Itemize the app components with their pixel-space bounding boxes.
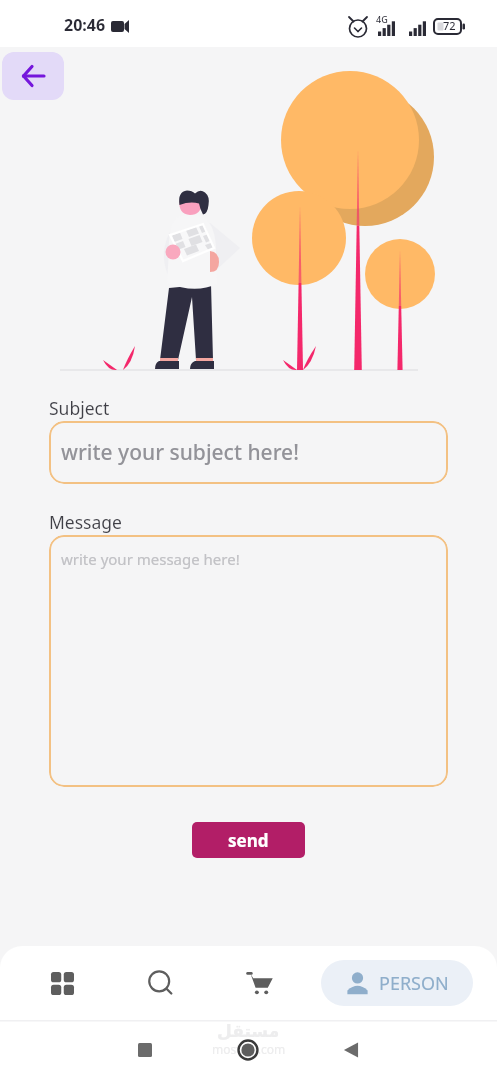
staticText: Message	[49, 510, 122, 534]
staticText: 20:46	[64, 14, 106, 36]
staticText: 72	[443, 18, 456, 33]
button[interactable]: Search	[139, 961, 183, 1005]
staticText: write your subject here!	[61, 438, 299, 467]
button[interactable]: Home	[228, 1030, 268, 1070]
button[interactable]: Back	[331, 1030, 371, 1070]
staticText: 4G	[376, 13, 388, 25]
button[interactable]: PERSON	[321, 960, 473, 1006]
staticText: send	[228, 829, 269, 852]
staticText: write your message here!	[61, 549, 240, 569]
staticText: Subject	[49, 396, 110, 420]
button[interactable]: Recents	[125, 1030, 165, 1070]
staticText: mostaql.com	[212, 1041, 286, 1057]
button[interactable]: write your message here!	[49, 535, 448, 787]
staticText: PERSON	[379, 971, 449, 996]
button[interactable]: Dashboard	[40, 961, 84, 1005]
button[interactable]: Recents	[125, 1020, 497, 1080]
button[interactable]: write your subject here!	[49, 421, 448, 484]
staticText: مستقل	[217, 1021, 280, 1041]
button[interactable]: Back	[2, 52, 64, 100]
button[interactable]: Cart	[238, 961, 282, 1005]
button[interactable]: send	[192, 822, 305, 858]
